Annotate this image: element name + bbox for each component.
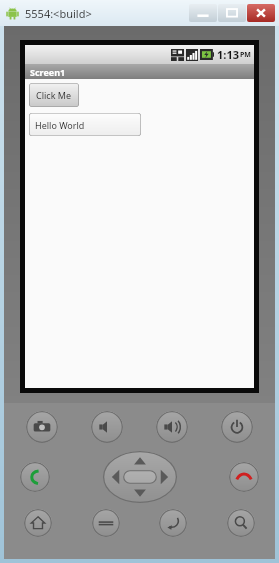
staticText: Click Me <box>36 89 72 101</box>
button[interactable]: Directional pad <box>103 451 177 503</box>
staticText: 5554:<build> <box>25 6 92 21</box>
button[interactable]: Home <box>24 509 52 537</box>
button[interactable]: Volume down <box>91 411 123 443</box>
button[interactable]: Back <box>159 509 187 537</box>
button[interactable]: End call <box>229 462 259 492</box>
button[interactable] <box>247 4 275 22</box>
staticText: 1:13 <box>217 47 239 62</box>
button[interactable]: Search <box>227 509 255 537</box>
staticText: PM <box>240 50 251 60</box>
button[interactable] <box>189 4 217 22</box>
button[interactable]: Click Me <box>29 83 79 107</box>
button[interactable] <box>218 4 246 22</box>
button[interactable]: Volume up <box>156 411 188 443</box>
button[interactable]: Camera <box>26 411 58 443</box>
button[interactable]: Menu <box>92 509 120 537</box>
button[interactable]: Power <box>221 411 253 443</box>
button[interactable]: Call <box>20 462 50 492</box>
staticText: Screen1 <box>30 66 66 78</box>
staticText: Hello World <box>35 119 85 131</box>
button[interactable]: Hello World <box>29 113 141 136</box>
